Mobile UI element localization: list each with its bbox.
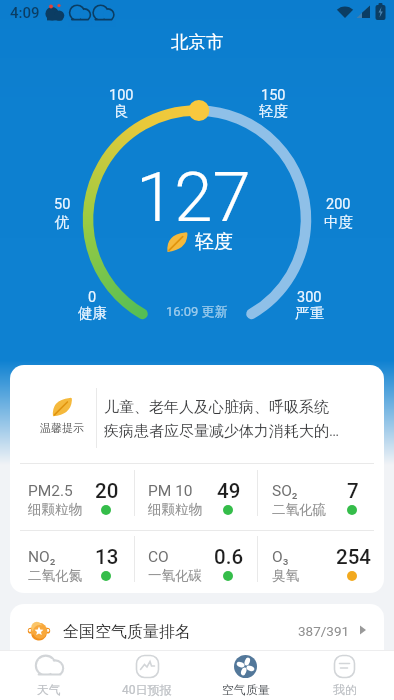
staticText: 300	[297, 289, 322, 306]
staticText: 轻度	[195, 230, 233, 254]
button[interactable]: 40日预报	[98, 650, 196, 700]
staticText: 北京市	[171, 31, 224, 53]
staticText: 50	[54, 196, 71, 213]
staticText: 全国空气质量排名	[63, 622, 191, 642]
staticText: 20	[95, 479, 119, 503]
staticText: 良	[114, 102, 129, 120]
staticText: 254	[336, 545, 371, 569]
staticText: 0	[88, 289, 97, 306]
staticText: 二氧化硫	[272, 501, 326, 518]
button[interactable]: 我的	[295, 650, 394, 700]
staticText: 49	[217, 479, 241, 503]
staticText: 7	[347, 479, 359, 503]
staticText: 387/391	[298, 623, 350, 639]
staticText: 一氧化碳	[148, 567, 202, 584]
staticText: 臭氧	[272, 567, 299, 584]
staticText: SO₂	[272, 482, 298, 500]
staticText: 0.6	[214, 545, 244, 569]
staticText: PM2.5	[28, 482, 73, 500]
staticText: 200	[326, 196, 351, 213]
staticText: 中度	[324, 213, 353, 231]
staticText: 我的	[333, 682, 357, 697]
staticText: 细颗粒物	[148, 501, 202, 518]
staticText: 100	[109, 87, 134, 104]
staticText: 温馨提示	[40, 421, 84, 435]
staticText: 细颗粒物	[28, 501, 82, 518]
staticText: CO	[148, 548, 169, 566]
staticText: O₃	[272, 548, 289, 566]
staticText: 轻度	[259, 102, 288, 120]
staticText: 儿童、老年人及心脏病、呼吸系统 疾病患者应尽量减少体力消耗大的…	[104, 398, 340, 441]
staticText: PM 10	[148, 482, 193, 500]
staticText: 健康	[78, 304, 107, 322]
staticText: 40日预报	[122, 682, 172, 697]
staticText: 严重	[295, 304, 324, 322]
button[interactable]: 全国空气质量排名	[10, 604, 384, 650]
staticText: 二氧化氮	[28, 567, 82, 584]
staticText: 13	[95, 545, 119, 569]
staticText: 150	[261, 87, 286, 104]
staticText: 优	[55, 213, 70, 231]
staticText: 127	[136, 157, 251, 238]
staticText: 16:09 更新	[166, 303, 228, 319]
staticText: 4:09	[10, 4, 40, 22]
staticText: NO₂	[28, 548, 56, 566]
staticText: 空气质量	[222, 682, 270, 697]
button[interactable]: 天气	[0, 650, 98, 700]
staticText: 天气	[37, 682, 61, 697]
button[interactable]: 空气质量	[196, 650, 295, 700]
